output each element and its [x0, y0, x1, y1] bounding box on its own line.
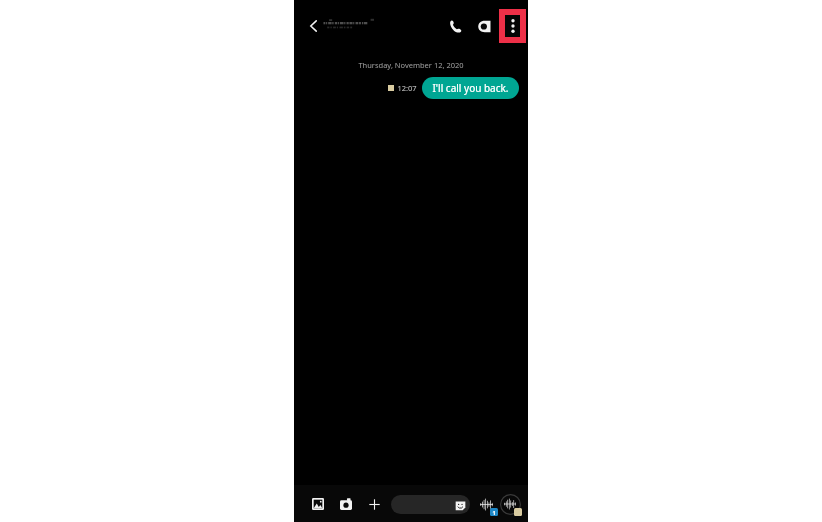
button[interactable]: I'll call you back. [422, 77, 519, 99]
button[interactable]: Call [441, 12, 469, 40]
button[interactable]: More attachments [363, 493, 385, 515]
staticText: Thursday, November 12, 2020 [358, 60, 464, 70]
staticText: 12:07 [397, 83, 417, 93]
button[interactable]: Take photo [335, 493, 357, 515]
button[interactable]: Record voice message [498, 492, 522, 516]
staticText: 1 [492, 509, 496, 516]
button[interactable]: Contact name [321, 14, 383, 34]
button[interactable]: Stickers [453, 498, 467, 512]
button[interactable]: Attach image [307, 493, 329, 515]
button[interactable]: Stickers [391, 495, 470, 514]
button[interactable]: Voice message [475, 493, 497, 515]
staticText: I'll call you back. [432, 81, 509, 95]
button[interactable]: More options [505, 15, 520, 37]
button[interactable]: Back [302, 14, 326, 38]
button[interactable]: Video call [470, 12, 498, 40]
